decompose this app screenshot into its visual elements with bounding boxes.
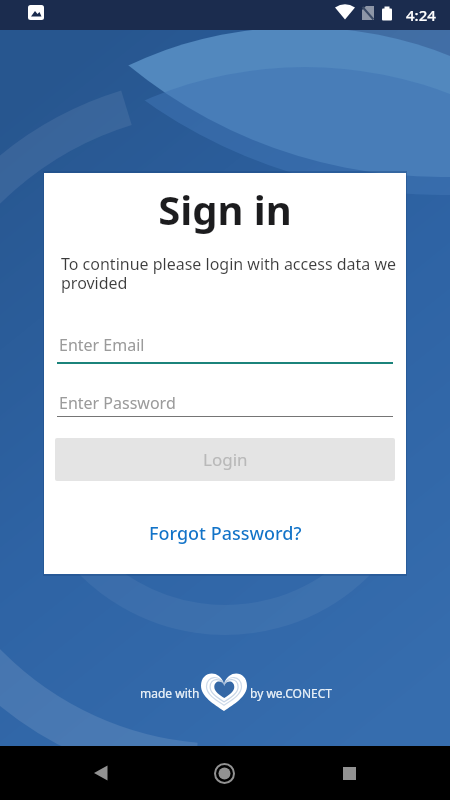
staticText: 4:24 (406, 5, 436, 25)
button[interactable]: Forgot Password? (44, 513, 406, 553)
staticText: Enter Password (59, 392, 176, 414)
staticText: Enter Email (59, 334, 145, 356)
staticText: Sign in (44, 182, 406, 236)
button[interactable] (325, 746, 373, 800)
staticText: by we.CONECT (250, 685, 332, 701)
staticText: To continue please login with access dat… (61, 253, 397, 294)
staticText: made with (140, 685, 200, 701)
button[interactable] (76, 746, 124, 800)
button[interactable] (200, 746, 248, 800)
button[interactable]: Login (55, 438, 395, 481)
staticText: Forgot Password? (149, 521, 302, 546)
button[interactable]: Enter Password (57, 378, 393, 417)
staticText: Login (203, 448, 248, 471)
button[interactable]: Enter Email (57, 323, 393, 364)
